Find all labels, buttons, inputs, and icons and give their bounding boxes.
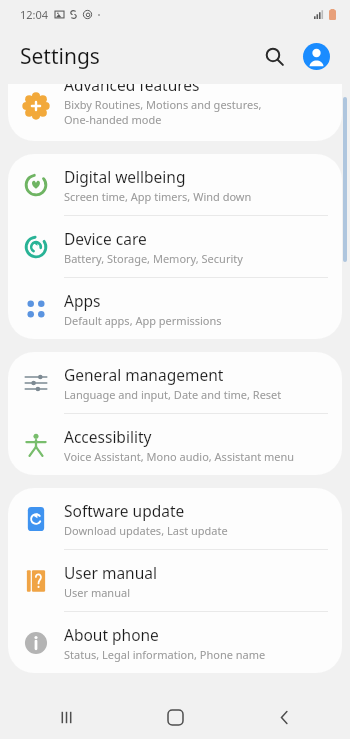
button[interactable]: Recents [46,697,86,737]
staticText: hardreset.guru [129,246,222,264]
staticText: HARD RESET [89,215,261,246]
staticText: Battery, Storage, Memory, Security [64,251,243,266]
button[interactable]: Back [264,697,304,737]
staticText: Settings [20,42,100,71]
button[interactable]: Home [155,697,195,737]
staticText: Software update [64,500,185,521]
button[interactable]: Account [296,36,336,76]
staticText: One-handed mode [64,112,162,127]
staticText: Advanced features [64,84,200,95]
button[interactable]: Digital wellbeing [8,154,342,215]
staticText: User manual [64,562,157,583]
staticText: Bixby Routines, Motions and gestures, [64,97,262,112]
button[interactable]: User manual [8,550,342,611]
button[interactable]: Apps [8,278,342,339]
staticText: Status, Legal information, Phone name [64,647,266,662]
staticText: 12:04 [20,7,49,22]
button[interactable]: Device care [8,216,342,277]
staticText: Language and input, Date and time, Reset [64,387,282,402]
button[interactable]: Accessibility [8,414,342,475]
staticText: General management [64,364,224,385]
button[interactable]: General management [8,352,342,413]
staticText: Digital wellbeing [64,166,186,187]
button[interactable]: Software update [8,488,342,549]
staticText: Accessibility [64,426,152,447]
button[interactable]: Search [254,36,294,76]
staticText: User manual [64,585,130,600]
staticText: Download updates, Last update [64,523,228,538]
staticText: Default apps, App permissions [64,313,222,328]
button[interactable]: Advanced features [8,84,342,141]
staticText: About phone [64,624,159,645]
staticText: Voice Assistant, Mono audio, Assistant m… [64,449,295,464]
button[interactable]: About phone [8,612,342,673]
staticText: Screen time, App timers, Wind down [64,189,252,204]
staticText: Apps [64,290,101,311]
staticText: Device care [64,228,147,249]
